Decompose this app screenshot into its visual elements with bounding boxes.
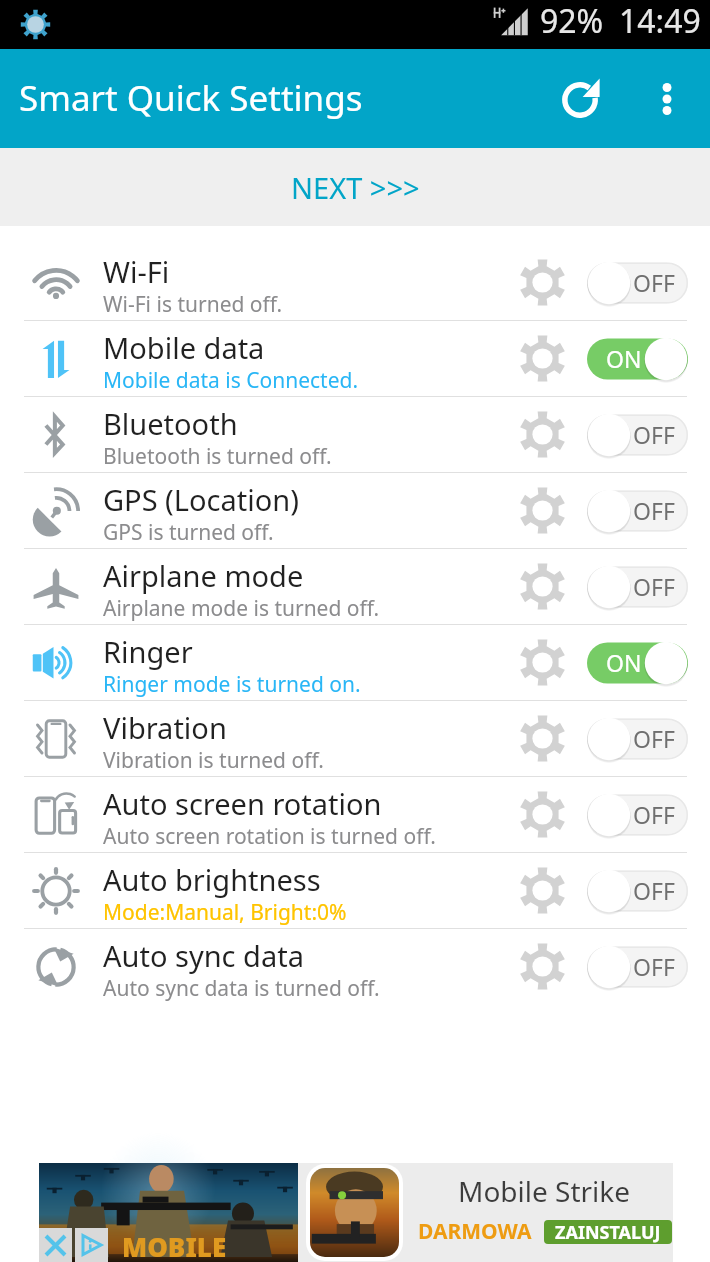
button[interactable]: Bluetooth bbox=[0, 397, 710, 472]
staticText: 92% bbox=[540, 0, 604, 43]
button[interactable]: GPS (Location) settings bbox=[509, 473, 575, 548]
button[interactable]: Ringer bbox=[0, 625, 710, 700]
staticText: DARMOWA bbox=[418, 1217, 532, 1246]
staticText: Auto sync data bbox=[103, 936, 304, 975]
staticText: Wi-Fi bbox=[103, 252, 170, 291]
staticText: Ringer mode is turned on. bbox=[103, 670, 361, 699]
button[interactable]: Ringer settings bbox=[509, 625, 575, 700]
button[interactable]: Mobile data bbox=[0, 321, 710, 396]
button[interactable]: OFF bbox=[587, 793, 688, 837]
button[interactable]: Refresh bbox=[560, 49, 640, 148]
staticText: Mobile Strike bbox=[458, 1172, 631, 1210]
staticText: OFF bbox=[633, 951, 675, 982]
button[interactable]: ZAINSTALUJ bbox=[544, 1220, 672, 1244]
staticText: Wi-Fi is turned off. bbox=[103, 290, 283, 319]
button[interactable]: OFF bbox=[587, 869, 688, 913]
staticText: Bluetooth is turned off. bbox=[103, 442, 332, 471]
staticText: Smart Quick Settings bbox=[19, 74, 363, 122]
staticText: OFF bbox=[633, 267, 675, 298]
staticText: OFF bbox=[633, 495, 675, 526]
button[interactable]: Auto sync data bbox=[0, 929, 710, 1004]
button[interactable]: Airplane mode settings bbox=[509, 549, 575, 624]
staticText: ZAINSTALUJ bbox=[555, 1220, 661, 1244]
staticText: NEXT >>> bbox=[291, 168, 420, 207]
button[interactable]: Wi-Fi settings bbox=[509, 245, 575, 320]
button[interactable]: OFF bbox=[587, 261, 688, 305]
staticText: OFF bbox=[633, 723, 675, 754]
staticText: Mobile data bbox=[103, 328, 265, 367]
staticText: Vibration bbox=[103, 708, 227, 747]
staticText: OFF bbox=[633, 875, 675, 906]
button[interactable]: OFF bbox=[587, 945, 688, 989]
button[interactable]: More options bbox=[640, 49, 710, 148]
button[interactable]: GPS (Location) bbox=[0, 473, 710, 548]
staticText: ON bbox=[606, 343, 642, 374]
staticText: ON bbox=[606, 647, 642, 678]
button[interactable]: Vibration bbox=[0, 701, 710, 776]
button[interactable]: Ad information bbox=[75, 1228, 108, 1262]
button[interactable]: OFF bbox=[587, 717, 688, 761]
button[interactable]: Wi-Fi bbox=[0, 245, 710, 320]
button[interactable]: NEXT >>> bbox=[0, 148, 710, 226]
staticText: Auto brightness bbox=[103, 860, 321, 899]
button[interactable]: OFF bbox=[587, 413, 688, 457]
button[interactable]: ON bbox=[587, 337, 688, 381]
staticText: OFF bbox=[633, 799, 675, 830]
staticText: Mobile data is Connected. bbox=[103, 366, 359, 395]
staticText: Bluetooth bbox=[103, 404, 238, 443]
staticText: Auto sync data is turned off. bbox=[103, 974, 380, 1003]
staticText: Airplane mode is turned off. bbox=[103, 594, 380, 623]
button[interactable]: Close ad bbox=[39, 1228, 72, 1262]
button[interactable]: Auto brightness settings bbox=[509, 853, 575, 928]
button[interactable]: Vibration settings bbox=[509, 701, 575, 776]
button[interactable]: Airplane mode bbox=[0, 549, 710, 624]
staticText: Mode:Manual, Bright:0% bbox=[103, 898, 347, 927]
button[interactable]: ON bbox=[587, 641, 688, 685]
staticText: Airplane mode bbox=[103, 556, 304, 595]
button[interactable]: OFF bbox=[587, 565, 688, 609]
staticText: OFF bbox=[633, 419, 675, 450]
staticText: Auto screen rotation bbox=[103, 784, 382, 823]
button[interactable]: MOBILE bbox=[39, 1163, 673, 1262]
staticText: OFF bbox=[633, 571, 675, 602]
button[interactable]: Auto brightness bbox=[0, 853, 710, 928]
staticText: Auto screen rotation is turned off. bbox=[103, 822, 436, 851]
button[interactable]: Auto screen rotation bbox=[0, 777, 710, 852]
button[interactable]: Bluetooth settings bbox=[509, 397, 575, 472]
staticText: MOBILE bbox=[122, 1229, 227, 1262]
button[interactable]: Auto screen rotation settings bbox=[509, 777, 575, 852]
staticText: 14:49 bbox=[619, 0, 701, 43]
button[interactable]: OFF bbox=[587, 489, 688, 533]
staticText: GPS (Location) bbox=[103, 480, 299, 519]
button[interactable]: Mobile data settings bbox=[509, 321, 575, 396]
staticText: Vibration is turned off. bbox=[103, 746, 324, 775]
button[interactable]: Auto sync data settings bbox=[509, 929, 575, 1004]
staticText: GPS is turned off. bbox=[103, 518, 274, 547]
staticText: Ringer bbox=[103, 632, 193, 671]
